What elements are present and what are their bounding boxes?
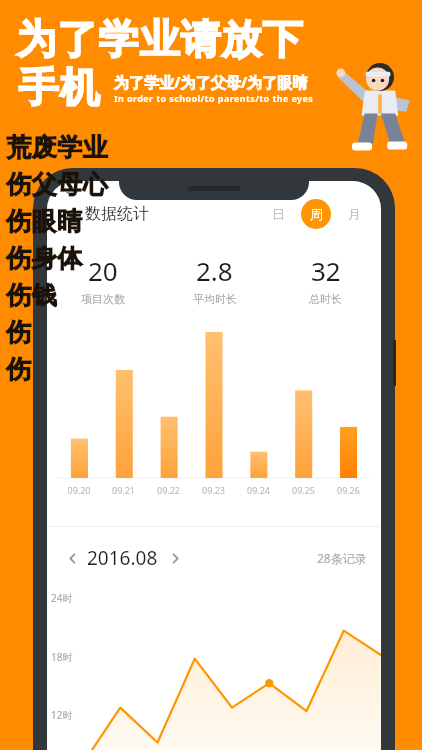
staticText: 伤父母心: [6, 169, 108, 200]
staticText: 伤: [6, 354, 32, 385]
staticText: In order to school/to parents/to the eye…: [114, 92, 314, 104]
staticText: 32: [311, 253, 341, 288]
staticText: 日: [272, 206, 285, 222]
button[interactable]: Back: [59, 201, 85, 227]
staticText: 09.22: [146, 484, 191, 496]
button[interactable]: Previous month: [61, 547, 83, 569]
staticText: 总时长: [309, 292, 342, 306]
staticText: 手机: [18, 62, 100, 112]
button[interactable]: 20: [47, 253, 159, 306]
staticText: 周: [310, 206, 323, 222]
staticText: 09.21: [101, 484, 146, 496]
staticText: 20: [88, 253, 118, 288]
staticText: 伤: [6, 317, 32, 348]
staticText: 09.20: [57, 484, 101, 496]
staticText: 2.8: [196, 253, 233, 288]
button[interactable]: 2.8: [159, 253, 270, 306]
button[interactable]: 日: [263, 199, 293, 229]
staticText: 09.24: [236, 484, 281, 496]
staticText: 数据统计: [85, 204, 149, 224]
staticText: 荒废学业: [6, 132, 108, 163]
button[interactable]: Next month: [164, 547, 186, 569]
button[interactable]: 月: [339, 199, 369, 229]
button[interactable]: 周: [301, 199, 331, 229]
staticText: 为了学业请放下: [16, 14, 303, 64]
staticText: 平均时长: [193, 292, 237, 306]
staticText: 09.25: [281, 484, 326, 496]
staticText: 伤钱: [6, 280, 57, 311]
staticText: 18时: [51, 650, 73, 664]
staticText: 为了学业/为了父母/为了眼睛: [114, 72, 308, 92]
staticText: 24时: [51, 591, 73, 605]
staticText: 12时: [51, 708, 73, 722]
staticText: 09.23: [191, 484, 236, 496]
button[interactable]: 32: [270, 253, 381, 306]
staticText: 项目次数: [81, 292, 125, 306]
staticText: 2016.08: [87, 545, 158, 571]
staticText: 伤眼睛: [6, 206, 83, 237]
staticText: 28条记录: [317, 550, 367, 566]
staticText: 09.26: [326, 484, 371, 496]
staticText: 月: [348, 206, 361, 222]
staticText: 伤身体: [6, 243, 83, 274]
